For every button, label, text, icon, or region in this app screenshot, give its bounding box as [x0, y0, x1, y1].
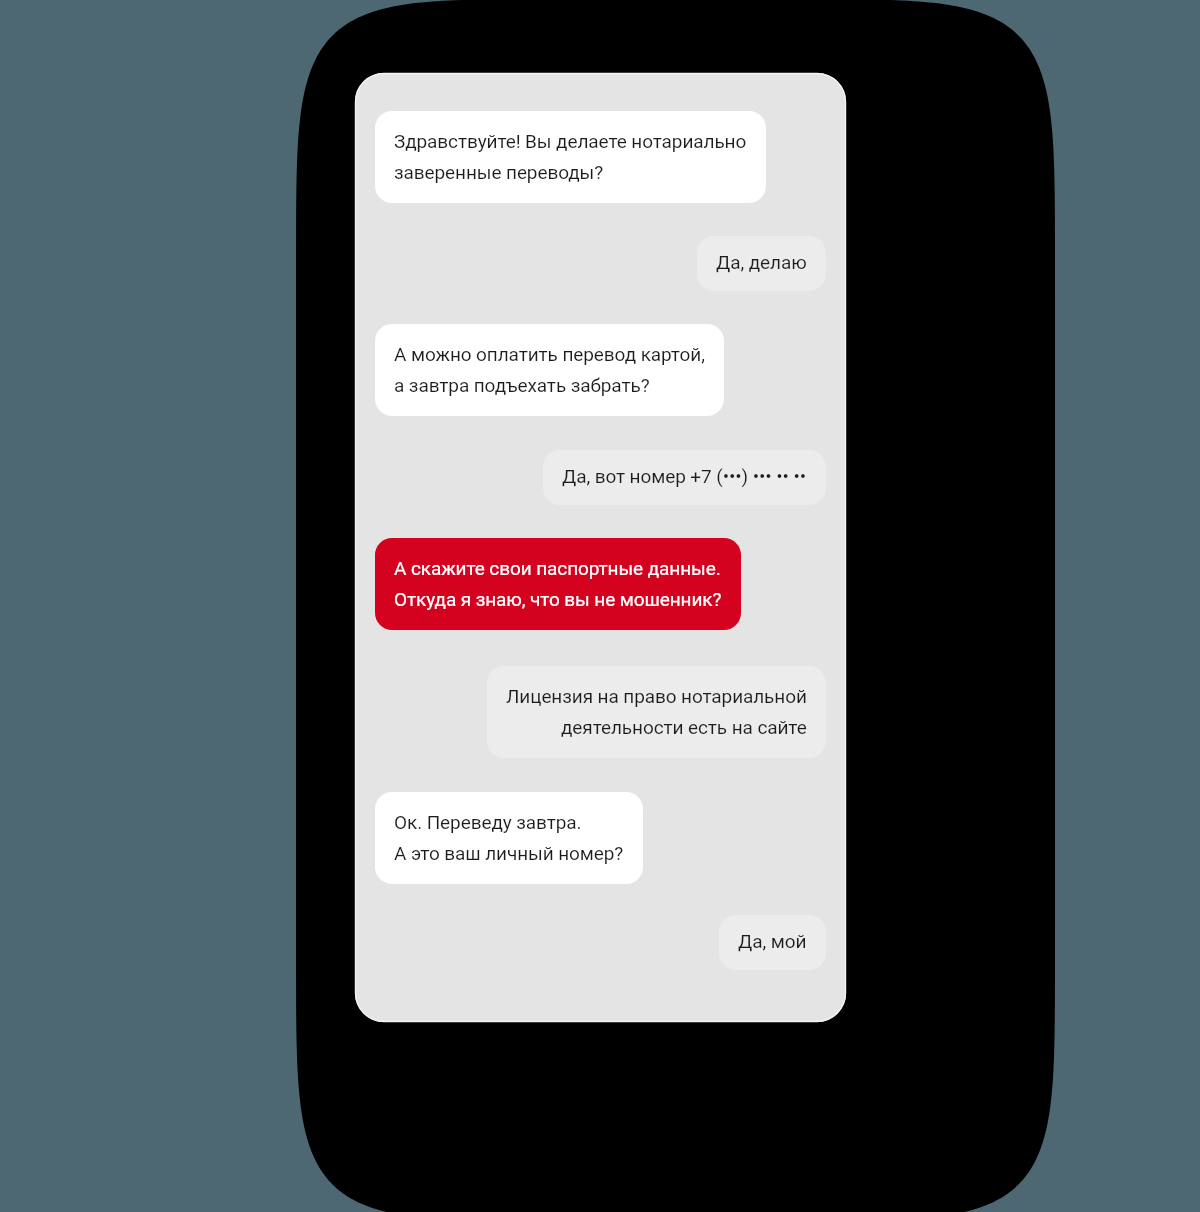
staticText: Лицензия на право нотариальной	[506, 685, 807, 707]
staticText: заверенные переводы?	[394, 161, 604, 183]
staticText: А скажите свои паспортные данные.	[394, 557, 721, 579]
staticText: А это ваш личный номер?	[394, 842, 624, 864]
staticText: Ок. Переведу завтра.	[394, 811, 582, 833]
button[interactable]: Здравствуйте! Вы делаете нотариально	[375, 111, 766, 203]
button[interactable]: Да, вот номер +7 (•••) ••• •• ••	[543, 450, 826, 505]
button[interactable]: Лицензия на право нотариальной	[487, 666, 826, 758]
button[interactable]: Да, мой	[719, 915, 826, 970]
staticText: Да, мой	[738, 930, 807, 952]
staticText: Да, вот номер +7 (•••) ••• •• ••	[562, 465, 807, 487]
staticText: Откуда я знаю, что вы не мошенник?	[394, 588, 722, 610]
button[interactable]: А можно оплатить перевод картой,	[375, 324, 724, 416]
staticText: Здравствуйте! Вы делаете нотариально	[394, 130, 747, 152]
staticText: Да, делаю	[716, 251, 807, 273]
button[interactable]: Да, делаю	[697, 236, 826, 291]
staticText: а завтра подъехать забрать?	[394, 374, 650, 396]
staticText: деятельности есть на сайте	[561, 716, 807, 738]
staticText: А можно оплатить перевод картой,	[394, 343, 705, 365]
button[interactable]: Ок. Переведу завтра.	[375, 792, 643, 884]
button[interactable]: А скажите свои паспортные данные.	[375, 538, 741, 630]
